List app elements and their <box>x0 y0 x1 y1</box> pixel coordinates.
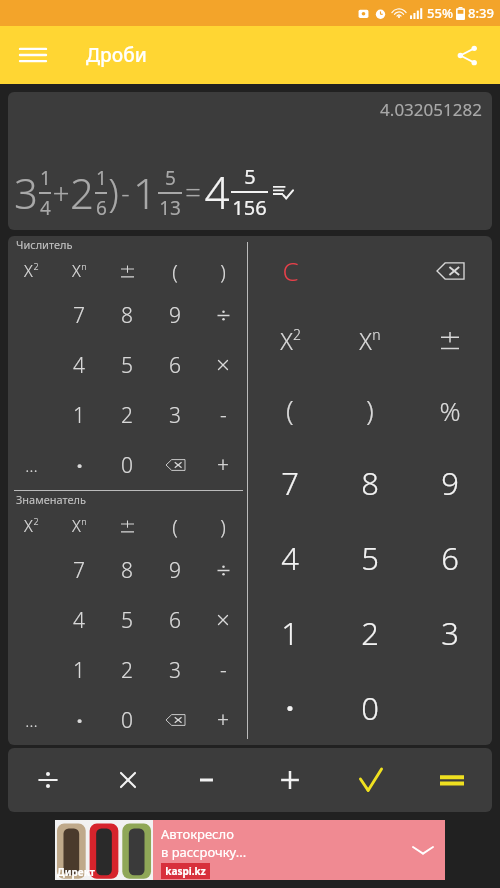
button[interactable]: Expand ad <box>401 820 445 880</box>
button[interactable]: … <box>8 440 55 490</box>
staticText: · <box>286 689 294 727</box>
staticText: 4 <box>281 537 299 579</box>
button[interactable]: 0 <box>103 695 151 745</box>
staticText: X <box>24 260 33 282</box>
button[interactable]: ) <box>330 375 410 445</box>
staticText: ) <box>220 258 226 285</box>
button[interactable]: 9 <box>151 290 199 340</box>
button[interactable]: … <box>8 695 55 745</box>
staticText: 156 <box>232 194 267 221</box>
staticText: Директ <box>57 865 95 879</box>
button[interactable]: Backspace <box>410 236 490 305</box>
button[interactable]: Backspace <box>151 440 199 490</box>
button[interactable]: 2 <box>103 645 151 695</box>
button[interactable]: 4 <box>55 340 103 390</box>
button[interactable]: X <box>250 305 330 375</box>
staticText: 1 <box>281 612 299 654</box>
button[interactable]: 7 <box>55 290 103 340</box>
staticText: X <box>72 260 81 282</box>
staticText: 2 <box>361 612 379 654</box>
staticText: ( <box>172 258 178 285</box>
button[interactable]: Share <box>444 32 490 78</box>
button[interactable]: 2 <box>330 595 410 670</box>
button[interactable]: 7 <box>250 445 330 520</box>
button[interactable]: 4 <box>55 595 103 645</box>
staticText: 2 <box>33 515 39 527</box>
button[interactable]: Minus <box>168 748 249 812</box>
button[interactable]: 8 <box>330 445 410 520</box>
button[interactable]: 9 <box>151 545 199 595</box>
staticText: 4 <box>204 162 230 222</box>
staticText: ) <box>366 391 374 429</box>
staticText: + <box>217 706 229 735</box>
staticText: 6 <box>441 537 459 579</box>
button[interactable]: Clear <box>250 236 330 305</box>
button[interactable]: Plus minus <box>410 305 490 375</box>
button[interactable]: 3 <box>410 595 490 670</box>
button[interactable]: 5 <box>103 595 151 645</box>
staticText: … <box>25 454 38 477</box>
staticText: + <box>52 172 70 213</box>
button[interactable]: Multiply <box>88 748 168 812</box>
staticText: 9 <box>441 462 459 504</box>
staticText: 3 <box>169 656 181 685</box>
button[interactable]: 3 <box>151 390 199 440</box>
button[interactable]: Multiply <box>199 595 247 645</box>
staticText: 4 <box>73 351 85 380</box>
button[interactable]: + <box>199 695 247 745</box>
button[interactable]: 3 <box>151 645 199 695</box>
staticText: ( <box>286 391 294 429</box>
button[interactable]: Backspace <box>151 695 199 745</box>
button[interactable]: ( <box>151 507 199 545</box>
button[interactable]: Divide <box>8 748 88 812</box>
button[interactable]: Plus <box>249 748 330 812</box>
staticText: X <box>359 325 372 356</box>
button[interactable]: X <box>8 507 55 545</box>
button[interactable]: · <box>55 440 103 490</box>
button[interactable]: X <box>55 252 103 290</box>
button[interactable]: Директ <box>55 820 445 880</box>
staticText: 55% <box>427 4 453 22</box>
button[interactable]: Divide <box>199 290 247 340</box>
button[interactable]: 1 <box>55 390 103 440</box>
button[interactable]: ( <box>250 375 330 445</box>
button[interactable]: Multiply <box>199 340 247 390</box>
button[interactable]: 6 <box>410 520 490 595</box>
button[interactable]: X <box>55 507 103 545</box>
button[interactable]: 6 <box>151 340 199 390</box>
button[interactable]: Divide <box>199 545 247 595</box>
button[interactable]: 5 <box>103 340 151 390</box>
button[interactable]: ) <box>199 252 247 290</box>
button[interactable]: Plus minus <box>103 252 151 290</box>
button[interactable]: - <box>199 390 247 440</box>
staticText: Автокресло <box>161 825 234 843</box>
button[interactable]: 8 <box>103 545 151 595</box>
button[interactable]: 1 <box>250 595 330 670</box>
button[interactable]: Equals <box>411 748 492 812</box>
button[interactable]: Confirm <box>330 748 411 812</box>
button[interactable]: · <box>55 695 103 745</box>
button[interactable]: ) <box>199 507 247 545</box>
button[interactable]: 4.032051282 <box>8 92 492 230</box>
button[interactable]: 2 <box>103 390 151 440</box>
staticText: 9 <box>169 556 181 585</box>
button[interactable]: 0 <box>330 670 410 745</box>
button[interactable]: ( <box>151 252 199 290</box>
button[interactable]: 4 <box>250 520 330 595</box>
button[interactable]: X <box>8 252 55 290</box>
button[interactable]: + <box>199 440 247 490</box>
button[interactable]: X <box>330 305 410 375</box>
button[interactable]: 8 <box>103 290 151 340</box>
button[interactable]: 1 <box>55 645 103 695</box>
button[interactable]: 7 <box>55 545 103 595</box>
button[interactable]: % <box>410 375 490 445</box>
button[interactable]: Plus minus <box>103 507 151 545</box>
button[interactable]: 9 <box>410 445 490 520</box>
staticText: ) <box>108 166 119 218</box>
button[interactable]: 0 <box>103 440 151 490</box>
button[interactable]: 6 <box>151 595 199 645</box>
button[interactable]: - <box>199 645 247 695</box>
button[interactable]: 5 <box>330 520 410 595</box>
button[interactable]: Menu <box>10 32 56 78</box>
button[interactable]: · <box>250 670 330 745</box>
